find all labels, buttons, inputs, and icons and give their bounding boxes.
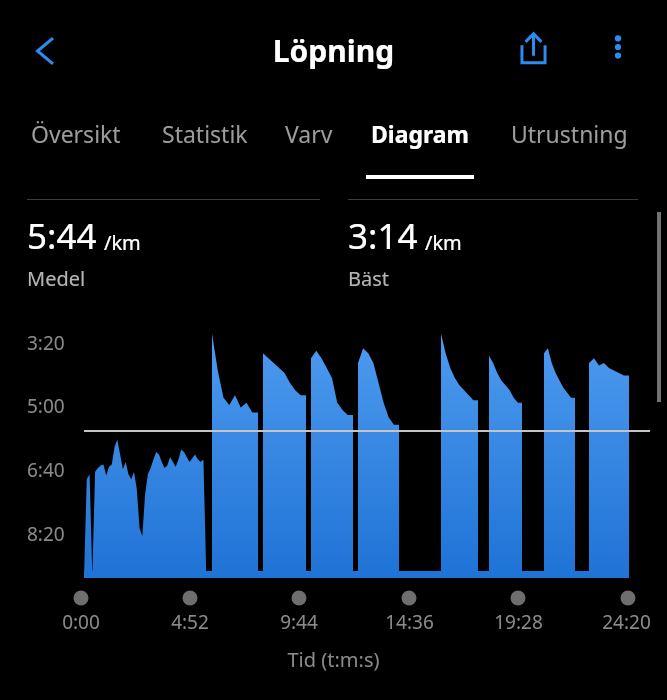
staticText: 3:20 <box>27 330 65 356</box>
button[interactable]: Varv <box>278 100 340 170</box>
staticText: 19:28 <box>494 609 543 635</box>
staticText: Statistik <box>162 118 248 149</box>
staticText: Utrustning <box>511 118 628 149</box>
staticText: Bäst <box>348 265 390 292</box>
staticText: 6:40 <box>27 457 65 483</box>
button[interactable]: Utrustning <box>496 100 642 170</box>
staticText: Löpning <box>0 30 667 71</box>
button[interactable]: Back <box>12 18 78 84</box>
button[interactable]: Statistik <box>152 100 258 170</box>
staticText: Varv <box>285 118 333 149</box>
button[interactable]: Diagram <box>362 100 478 170</box>
staticText: Tid (t:m:s) <box>0 646 667 673</box>
staticText: 9:44 <box>280 609 318 635</box>
staticText: 24:20 <box>602 609 651 635</box>
staticText: /km <box>104 229 141 256</box>
staticText: Medel <box>27 265 86 292</box>
button[interactable]: Share <box>503 18 563 78</box>
staticText: 5:44 <box>27 212 97 260</box>
staticText: Översikt <box>31 118 121 149</box>
button[interactable]: More options <box>589 18 647 76</box>
staticText: 4:52 <box>171 609 209 635</box>
staticText: Diagram <box>371 118 470 149</box>
staticText: 0:00 <box>62 609 100 635</box>
staticText: 14:36 <box>385 609 434 635</box>
staticText: 3:14 <box>348 212 418 260</box>
staticText: 8:20 <box>27 521 65 547</box>
button[interactable]: Översikt <box>22 100 130 170</box>
staticText: /km <box>425 229 462 256</box>
staticText: 5:00 <box>27 393 65 419</box>
